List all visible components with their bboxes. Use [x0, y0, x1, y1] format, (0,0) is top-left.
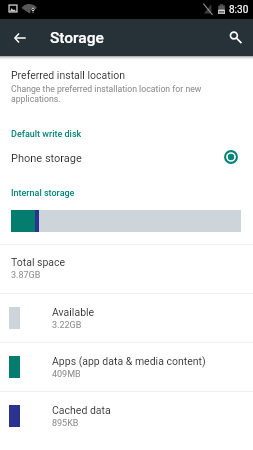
staticText: Apps (app data & media content): [52, 355, 206, 367]
button[interactable]: Apps (app data & media content): [0, 343, 253, 391]
button[interactable]: Cached data: [0, 392, 253, 440]
button[interactable]: Preferred install location: [0, 56, 253, 111]
staticText: Available: [52, 306, 95, 318]
staticText: Preferred install location: [11, 69, 126, 81]
staticText: 3.22GB: [52, 320, 82, 331]
button[interactable]: Available: [0, 294, 253, 342]
staticText: Cached data: [52, 404, 111, 416]
staticText: 409MB: [52, 369, 81, 380]
staticText: 895KB: [52, 418, 79, 429]
staticText: Internal storage: [11, 188, 75, 199]
button[interactable]: Navigate up: [6, 24, 34, 52]
staticText: 8:30: [229, 4, 249, 16]
staticText: Phone storage: [11, 152, 82, 165]
button[interactable]: Search: [221, 24, 249, 52]
staticText: Default write disk: [11, 129, 82, 140]
staticText: Storage: [50, 29, 104, 47]
button[interactable]: Total space: [0, 245, 253, 293]
button[interactable]: Phone storage: [0, 145, 253, 174]
staticText: Change the preferred installation locati…: [11, 84, 241, 104]
staticText: Total space: [11, 256, 66, 268]
staticText: 3.87GB: [11, 270, 41, 281]
